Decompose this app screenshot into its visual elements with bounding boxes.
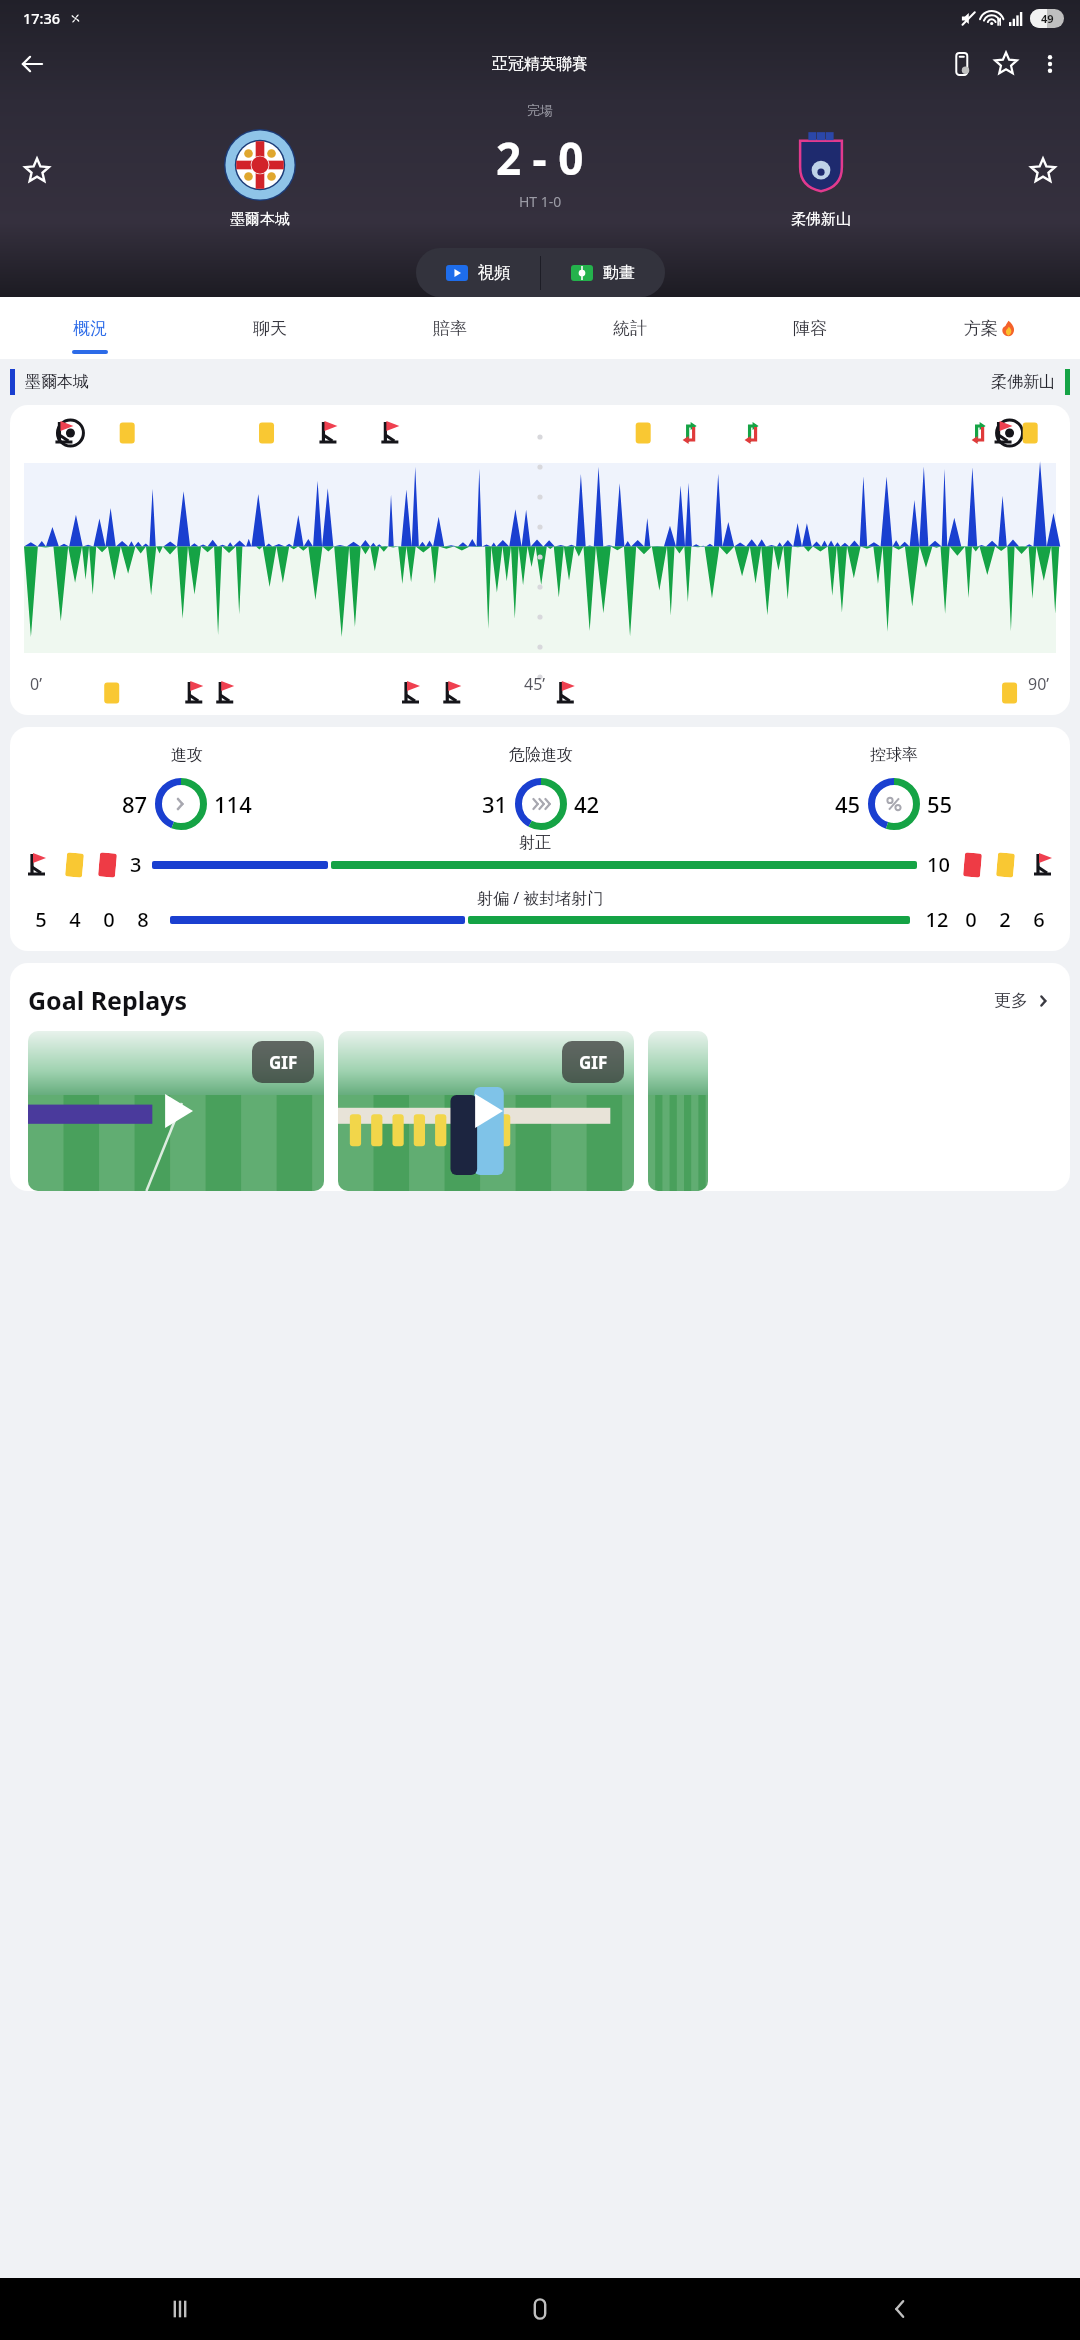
staticText: 陣容 [793,318,827,339]
staticText: 概況 [73,318,107,339]
staticText: 柔佛新山 [991,372,1055,392]
button[interactable]: Play goal replay [338,1031,634,1191]
button[interactable]: 統計 [540,297,720,359]
staticText: 10 [927,851,950,878]
staticText: 49 [1041,11,1054,26]
staticText: 完場 [0,102,1080,118]
button[interactable]: 進攻 [10,727,1070,951]
button[interactable]: Play goal replay [28,1031,324,1191]
staticText: 2 - 0 [496,128,584,188]
staticText: Goal Replays [28,983,188,1017]
staticText: 墨爾本城 [25,372,89,392]
staticText: 4 [58,906,92,933]
button[interactable]: Recents [0,2278,360,2340]
button[interactable]: Play goal replay [648,1031,708,1191]
staticText: 5 [24,906,58,933]
staticText: 射偏 / 被封堵射门 [477,887,604,909]
staticText: 6 [1022,906,1056,933]
button[interactable]: Back [720,2278,1080,2340]
staticText: GIF [269,1051,298,1074]
staticText: 31 [482,789,508,819]
staticText: 危險進攻 [509,745,573,765]
staticText: 柔佛新山 [791,210,851,229]
button[interactable]: 更多 [994,990,1054,1011]
button[interactable]: 賠率 [360,297,540,359]
staticText: 17:36 [23,8,61,28]
staticText: 進攻 [171,745,203,765]
button[interactable]: More options [1028,42,1072,86]
button[interactable]: Favorite away team [1006,124,1080,234]
button[interactable]: Home [360,2278,720,2340]
button[interactable]: Favorite [984,42,1028,86]
button[interactable]: 聊天 [180,297,360,359]
staticText: 55 [927,789,953,819]
staticText: 動畫 [603,263,635,283]
button[interactable]: Back [8,40,56,88]
button[interactable]: Favorite home team [0,124,74,234]
staticText: 0 [92,906,126,933]
staticText: 墨爾本城 [230,210,290,229]
staticText: 2 [988,906,1022,933]
button[interactable]: 視頻 [416,248,540,297]
button[interactable]: 陣容 [720,297,900,359]
staticText: 亞冠精英聯賽 [492,54,588,74]
staticText: 視頻 [478,263,510,283]
staticText: 賠率 [433,318,467,339]
staticText: 射正 [519,833,551,853]
staticText: 聊天 [253,318,287,339]
staticText: 0’ [30,673,42,695]
staticText: 90’ [1028,673,1050,695]
button[interactable]: 0’ [10,405,1070,715]
staticText: 3 [130,851,142,878]
staticText: 方案 [964,318,998,339]
button[interactable]: 概況 [0,297,180,359]
staticText: 87 [122,789,148,819]
staticText: HT 1-0 [519,192,562,211]
staticText: 8 [126,906,160,933]
staticText: 114 [214,789,252,819]
button[interactable]: Remote control [940,42,984,86]
staticText: 更多 [994,990,1028,1011]
staticText: 統計 [613,318,647,339]
staticText: 0 [954,906,988,933]
staticText: 45’ [524,673,546,695]
button[interactable]: 動畫 [541,248,665,297]
staticText: 控球率 [870,745,918,765]
staticText: 45 [835,789,861,819]
staticText: 42 [574,789,600,819]
staticText: GIF [579,1051,608,1074]
button[interactable]: 方案 [900,297,1080,359]
staticText: 12 [920,906,954,933]
